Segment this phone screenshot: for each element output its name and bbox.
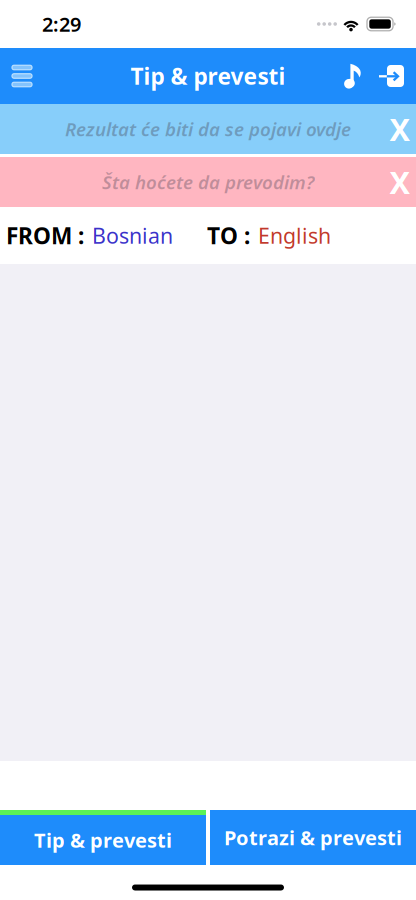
button[interactable]: Tip & prevesti [0, 810, 206, 865]
button[interactable]: Translate to English [203, 207, 335, 264]
staticText: FROM : [6, 220, 84, 250]
staticText: X [389, 109, 410, 149]
button[interactable]: Clear text [384, 104, 416, 154]
staticText: X [389, 162, 410, 202]
staticText: English [258, 221, 331, 250]
button[interactable]: Potrazi & prevesti [210, 810, 416, 865]
staticText: Tip & prevesti [34, 827, 172, 853]
staticText: Potrazi & prevesti [224, 824, 402, 851]
staticText: Tip & prevesti [130, 61, 285, 91]
button[interactable]: Speak [335, 48, 370, 104]
staticText: TO : [207, 220, 250, 250]
staticText: 2:29 [42, 11, 81, 37]
button[interactable]: Translate from Bosnian [0, 207, 177, 264]
button[interactable]: Share [370, 48, 416, 104]
button[interactable]: Šta hoćete da prevodim? [0, 157, 416, 207]
button[interactable]: Rezultat će biti da se pojavi ovdje [0, 104, 416, 154]
staticText: Bosnian [92, 221, 173, 250]
button[interactable]: Clear text [384, 157, 416, 207]
staticText: Šta hoćete da prevodim? [102, 170, 314, 194]
button[interactable]: Menu [0, 48, 44, 104]
staticText: Rezultat će biti da se pojavi ovdje [65, 117, 351, 141]
